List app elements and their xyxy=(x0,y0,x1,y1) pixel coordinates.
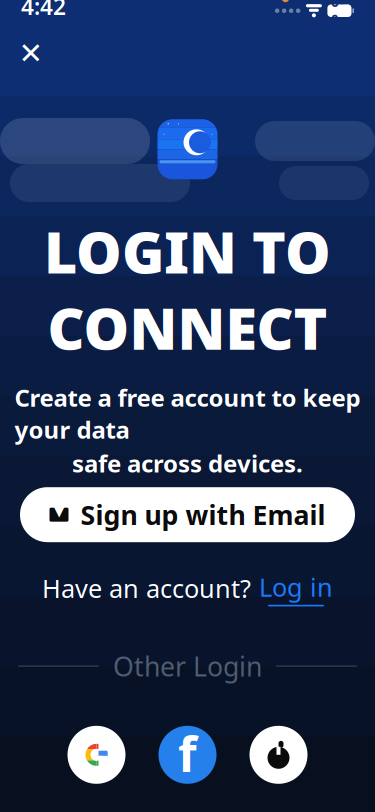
staticText: Create a free account to keep your data xyxy=(14,382,360,445)
staticText: ▼ xyxy=(53,502,64,519)
staticText: CONNECT xyxy=(47,289,327,365)
staticText: 60 xyxy=(331,0,339,28)
staticText: ✕ xyxy=(18,37,43,70)
button[interactable]: Log in xyxy=(259,570,333,606)
staticText: Log in xyxy=(259,570,333,604)
staticText: safe across devices. xyxy=(72,447,303,479)
button[interactable]: ▼ xyxy=(20,487,355,542)
staticText: Have an account? xyxy=(42,571,251,605)
staticText: Sign up with Email xyxy=(80,497,325,532)
staticText: 4:42 xyxy=(21,0,66,21)
staticText: LOGIN TO xyxy=(44,213,331,289)
button[interactable]: Sign in with Google xyxy=(67,726,125,784)
button[interactable]: Sign in with Apple xyxy=(249,726,307,784)
staticText: f xyxy=(178,721,197,785)
staticText: Other Login xyxy=(113,648,262,684)
button[interactable]: Close xyxy=(9,31,53,75)
button[interactable]: Sign in with Facebook xyxy=(158,726,216,784)
